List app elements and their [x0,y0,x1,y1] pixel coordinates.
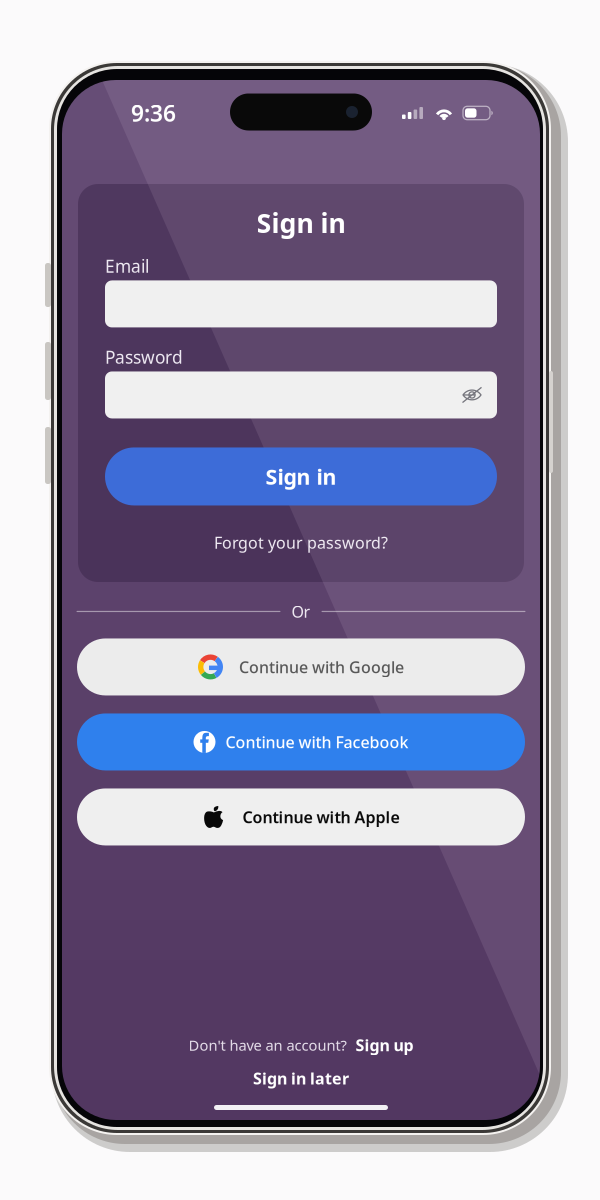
button[interactable]: Continue with Facebook [77,713,525,770]
staticText: Or [291,601,310,622]
button[interactable]: Forgot your password? [105,527,497,557]
staticText: Sign up [355,1034,413,1056]
staticText: Don't have an account? [188,1035,346,1055]
staticText: Continue with Facebook [225,731,408,752]
button[interactable]: Show password [462,371,497,418]
staticText: Sign in [265,462,336,491]
staticText: Continue with Apple [242,806,399,827]
staticText: Continue with Google [239,656,404,677]
staticText: Sign in later [253,1068,349,1089]
button[interactable]: Sign up [355,1034,413,1056]
staticText: Email [105,254,149,277]
button[interactable]: Sign in later [253,1068,349,1089]
button[interactable]: Continue with Apple [77,788,525,845]
button[interactable]: Continue with Google [77,638,525,695]
staticText: Sign in [256,205,345,240]
staticText: 9:36 [131,98,176,128]
button[interactable]: Sign in [105,447,497,505]
staticText: Password [105,345,183,368]
staticText: Forgot your password? [214,532,388,553]
